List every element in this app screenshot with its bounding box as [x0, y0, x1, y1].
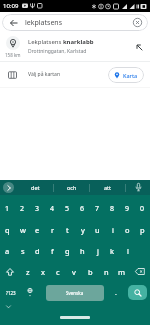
- button[interactable]: f: [45, 240, 60, 261]
- button[interactable]: [126, 180, 150, 195]
- staticText: 4: [50, 204, 55, 214]
- button[interactable]: u: [90, 219, 105, 240]
- button[interactable]: m: [114, 261, 130, 282]
- button[interactable]: d: [30, 240, 45, 261]
- button[interactable]: s: [15, 240, 30, 261]
- staticText: b: [88, 267, 93, 277]
- button[interactable]: h: [75, 240, 90, 261]
- button[interactable]: 4: [45, 198, 60, 219]
- staticText: a: [5, 246, 10, 256]
- staticText: 0: [140, 204, 145, 214]
- staticText: lekplatsens: [25, 18, 63, 28]
- staticText: y: [81, 225, 85, 235]
- staticText: 7: [95, 204, 100, 214]
- staticText: Svenska: [66, 290, 84, 296]
- staticText: o: [125, 225, 130, 235]
- button[interactable]: k: [105, 240, 120, 261]
- button[interactable]: y: [75, 219, 90, 240]
- staticText: u: [95, 225, 100, 235]
- button[interactable]: 2: [15, 198, 30, 219]
- staticText: s: [21, 246, 25, 256]
- staticText: Välj på kartan: [28, 71, 61, 78]
- button[interactable]: e: [30, 219, 45, 240]
- button[interactable]: c: [50, 261, 66, 282]
- button[interactable]: 5: [60, 198, 75, 219]
- staticText: e: [35, 225, 40, 235]
- button[interactable]: [133, 18, 142, 27]
- staticText: w: [20, 225, 26, 235]
- staticText: 10:09: [3, 2, 19, 10]
- button[interactable]: 9: [120, 198, 135, 219]
- button[interactable]: och: [54, 180, 89, 195]
- staticText: Drottninggatan, Karlstad: [28, 48, 87, 55]
- staticText: 6: [80, 204, 85, 214]
- staticText: i: [112, 225, 114, 235]
- button[interactable]: [10, 19, 18, 27]
- button[interactable]: [136, 44, 143, 51]
- button[interactable]: ?123: [0, 282, 22, 303]
- button[interactable]: att: [90, 180, 125, 195]
- button[interactable]: t: [60, 219, 75, 240]
- staticText: x: [41, 267, 45, 277]
- button[interactable]: [22, 282, 38, 303]
- staticText: z: [26, 267, 30, 277]
- staticText: g: [65, 246, 70, 256]
- staticText: Lekplatsens knarklabb: [28, 38, 94, 46]
- button[interactable]: [128, 285, 147, 300]
- button[interactable]: r: [45, 219, 60, 240]
- staticText: r: [51, 225, 55, 235]
- button[interactable]: a: [0, 240, 15, 261]
- staticText: q: [5, 225, 10, 235]
- button[interactable]: x: [35, 261, 50, 282]
- button[interactable]: 3: [30, 198, 45, 219]
- button[interactable]: o: [120, 219, 135, 240]
- button[interactable]: 7: [90, 198, 105, 219]
- staticText: Karta: [123, 72, 138, 79]
- button[interactable]: 6: [75, 198, 90, 219]
- button[interactable]: w: [15, 219, 30, 240]
- staticText: 9: [125, 204, 130, 214]
- button[interactable]: [3, 182, 14, 193]
- staticText: f: [51, 246, 54, 256]
- button[interactable]: b: [82, 261, 98, 282]
- staticText: det: [31, 184, 40, 191]
- staticText: n: [104, 267, 109, 277]
- staticText: d: [35, 246, 40, 256]
- button[interactable]: p: [135, 219, 150, 240]
- button[interactable]: Svenska: [46, 285, 104, 301]
- button[interactable]: 1: [0, 198, 15, 219]
- button[interactable]: 8: [105, 198, 120, 219]
- staticText: 3: [35, 204, 40, 214]
- button[interactable]: det: [17, 180, 53, 195]
- button[interactable]: n: [98, 261, 114, 282]
- button[interactable]: .: [104, 282, 128, 303]
- button[interactable]: Karta: [108, 67, 144, 83]
- staticText: 5: [65, 204, 70, 214]
- staticText: att: [104, 184, 112, 191]
- button[interactable]: [6, 305, 11, 309]
- button[interactable]: lekplatsens: [2, 14, 148, 31]
- button[interactable]: [0, 261, 20, 282]
- button[interactable]: z: [20, 261, 35, 282]
- staticText: och: [67, 184, 77, 191]
- button[interactable]: q: [0, 219, 15, 240]
- staticText: h: [80, 246, 85, 256]
- staticText: v: [72, 267, 76, 277]
- staticText: .: [115, 288, 117, 298]
- staticText: c: [56, 267, 60, 277]
- button[interactable]: Välj på kartan: [0, 62, 150, 87]
- button[interactable]: j: [90, 240, 105, 261]
- button[interactable]: 158 km: [0, 33, 150, 61]
- staticText: k: [110, 246, 115, 256]
- button[interactable]: [130, 261, 150, 282]
- button[interactable]: v: [66, 261, 82, 282]
- staticText: 158 km: [5, 52, 21, 58]
- staticText: l: [127, 246, 129, 256]
- staticText: ?123: [6, 290, 16, 296]
- button[interactable]: g: [60, 240, 75, 261]
- staticText: 2: [20, 204, 25, 214]
- button[interactable]: i: [105, 219, 120, 240]
- staticText: p: [140, 225, 145, 235]
- button[interactable]: 0: [135, 198, 150, 219]
- button[interactable]: l: [120, 240, 135, 261]
